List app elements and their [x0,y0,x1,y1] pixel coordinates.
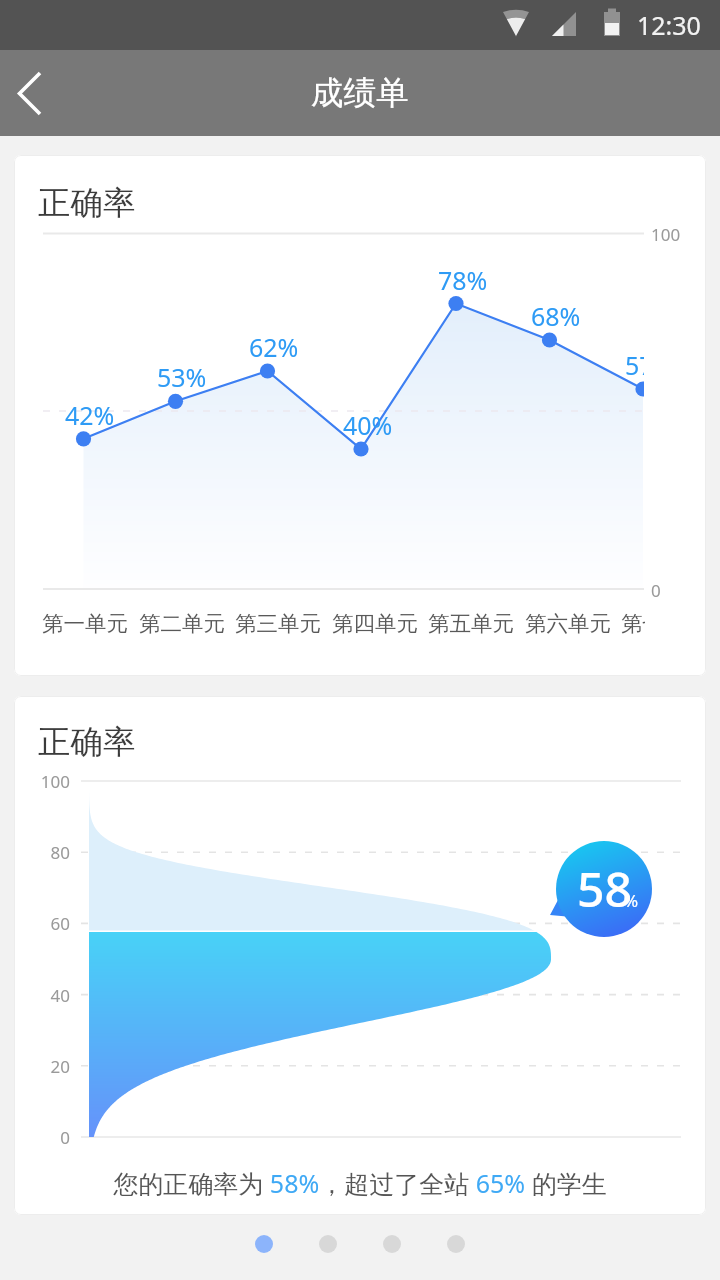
staticText: 第五单元 [428,610,514,637]
staticText: 您的正确率为 58%，超过了全站 65% 的学生 [14,1166,706,1200]
staticText: 第二单元 [139,610,225,637]
staticText: 100 [651,223,681,246]
staticText: 第三单元 [235,610,321,637]
staticText: 第一单元 [42,610,128,637]
staticText: 80 [18,841,70,864]
button[interactable]: 正确率 [14,696,706,1215]
button[interactable]: 正确率 [14,155,706,676]
staticText: 57% [625,348,644,382]
staticText: 成绩单 [311,73,409,114]
staticText: 42% [65,398,115,432]
staticText: 78% [438,263,488,297]
staticText: 0 [651,579,661,602]
staticText: 第六单元 [525,610,611,637]
staticText: 58 [577,856,632,921]
staticText: 0 [18,1126,70,1149]
staticText: 正确率 [38,722,136,763]
staticText: 第七单元 [621,610,645,637]
staticText: 40% [343,408,393,442]
button[interactable]: Back [0,50,80,136]
staticText: 100 [18,770,70,793]
staticText: 68% [531,299,581,333]
staticText: 正确率 [38,183,136,224]
staticText: 53% [157,360,207,394]
staticText: 40 [18,984,70,1007]
staticText: 20 [18,1055,70,1078]
staticText: 12:30 [637,8,701,42]
staticText: 60 [18,912,70,935]
staticText: 62% [249,330,299,364]
staticText: % [624,889,639,912]
staticText: 第四单元 [332,610,418,637]
